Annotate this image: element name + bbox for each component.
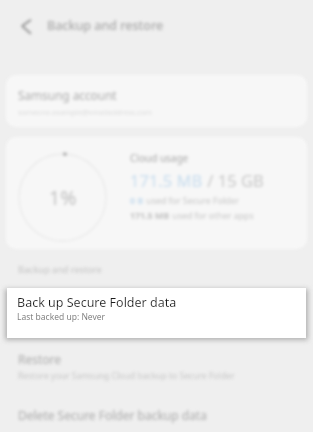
staticText: Last backed up: Never [17,311,106,323]
staticText: used for Secure Folder [144,195,240,207]
staticText: used for other apps [170,210,254,222]
staticText: Samsung account [18,87,117,103]
staticText: Backup and restore [47,17,164,34]
staticText: Restore your Samsung Cloud backup to Sec… [18,370,235,382]
staticText: Cloud usage [130,151,189,165]
staticText: 1% [49,184,77,211]
staticText: 171.5 MB [130,210,170,222]
staticText: Restore [18,351,62,367]
button[interactable]: Delete Secure Folder backup data [0,398,313,432]
staticText: someone.example@emailaddress.com [18,107,152,117]
staticText: 0 B [130,195,144,207]
staticText: Back up Secure Folder data [17,294,177,311]
button[interactable] [6,75,307,127]
button[interactable]: Back [12,13,36,37]
staticText: Delete Secure Folder backup data [18,407,207,423]
button[interactable] [6,137,307,249]
staticText: / 15 GB [203,169,264,191]
staticText: 171.5 MB [130,169,203,191]
button[interactable]: Back up Secure Folder data [7,288,306,338]
button[interactable]: Restore [0,345,313,387]
staticText: Backup and restore [18,263,102,275]
